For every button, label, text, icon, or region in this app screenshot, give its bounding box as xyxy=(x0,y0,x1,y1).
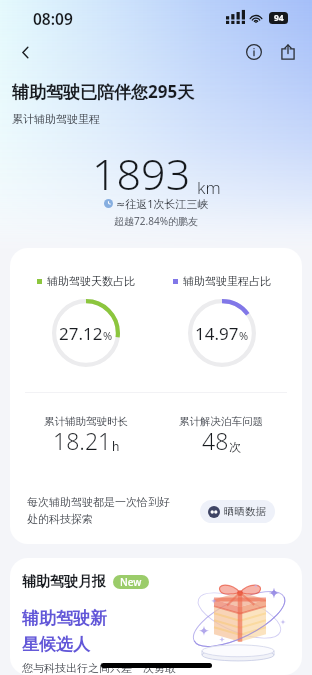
staticText: 辅助驾驶天数占比 xyxy=(47,274,135,288)
staticText: % xyxy=(239,328,249,343)
button[interactable]: Info xyxy=(238,36,270,68)
staticText: 晒晒数据 xyxy=(224,505,266,518)
button[interactable]: Share xyxy=(272,36,304,68)
staticText: New xyxy=(120,575,142,589)
staticText: 累计辅助驾驶里程 xyxy=(12,112,100,126)
staticText: % xyxy=(103,328,113,343)
button[interactable]: 晒晒数据 xyxy=(200,500,275,523)
staticText: 94 xyxy=(274,12,284,24)
staticText: 辅助驾驶里程占比 xyxy=(183,274,271,288)
staticText: 18.21 xyxy=(53,425,112,456)
staticText: 辅助驾驶月报 xyxy=(22,573,106,591)
staticText: 辅助驾驶新 xyxy=(22,608,107,629)
staticText: 次 xyxy=(229,439,241,454)
staticText: 1893 xyxy=(92,144,191,203)
staticText: 辅助驾驶已陪伴您295天 xyxy=(12,80,195,103)
button[interactable]: 辅助驾驶月报 xyxy=(10,558,302,675)
staticText: h xyxy=(112,438,120,454)
staticText: 每次辅助驾驶都是一次恰到好处的科技探索 xyxy=(27,495,173,527)
staticText: 星候选人 xyxy=(22,634,90,655)
staticText: 48 xyxy=(202,425,229,456)
staticText: 27.12 xyxy=(59,322,103,345)
staticText: 累计辅助驾驶时长 xyxy=(44,415,128,428)
staticText: 14.97 xyxy=(195,322,239,345)
staticText: 累计解决泊车问题 xyxy=(179,415,263,428)
button[interactable]: Back xyxy=(8,36,42,68)
staticText: 超越72.84%的鹏友 xyxy=(0,214,312,228)
staticText: km xyxy=(197,176,221,199)
staticText: 您与科技出行之间只差一次勇敢 xyxy=(22,661,176,675)
staticText: ≈往返1次长江三峡 xyxy=(116,196,209,211)
staticText: 08:09 xyxy=(33,8,73,29)
